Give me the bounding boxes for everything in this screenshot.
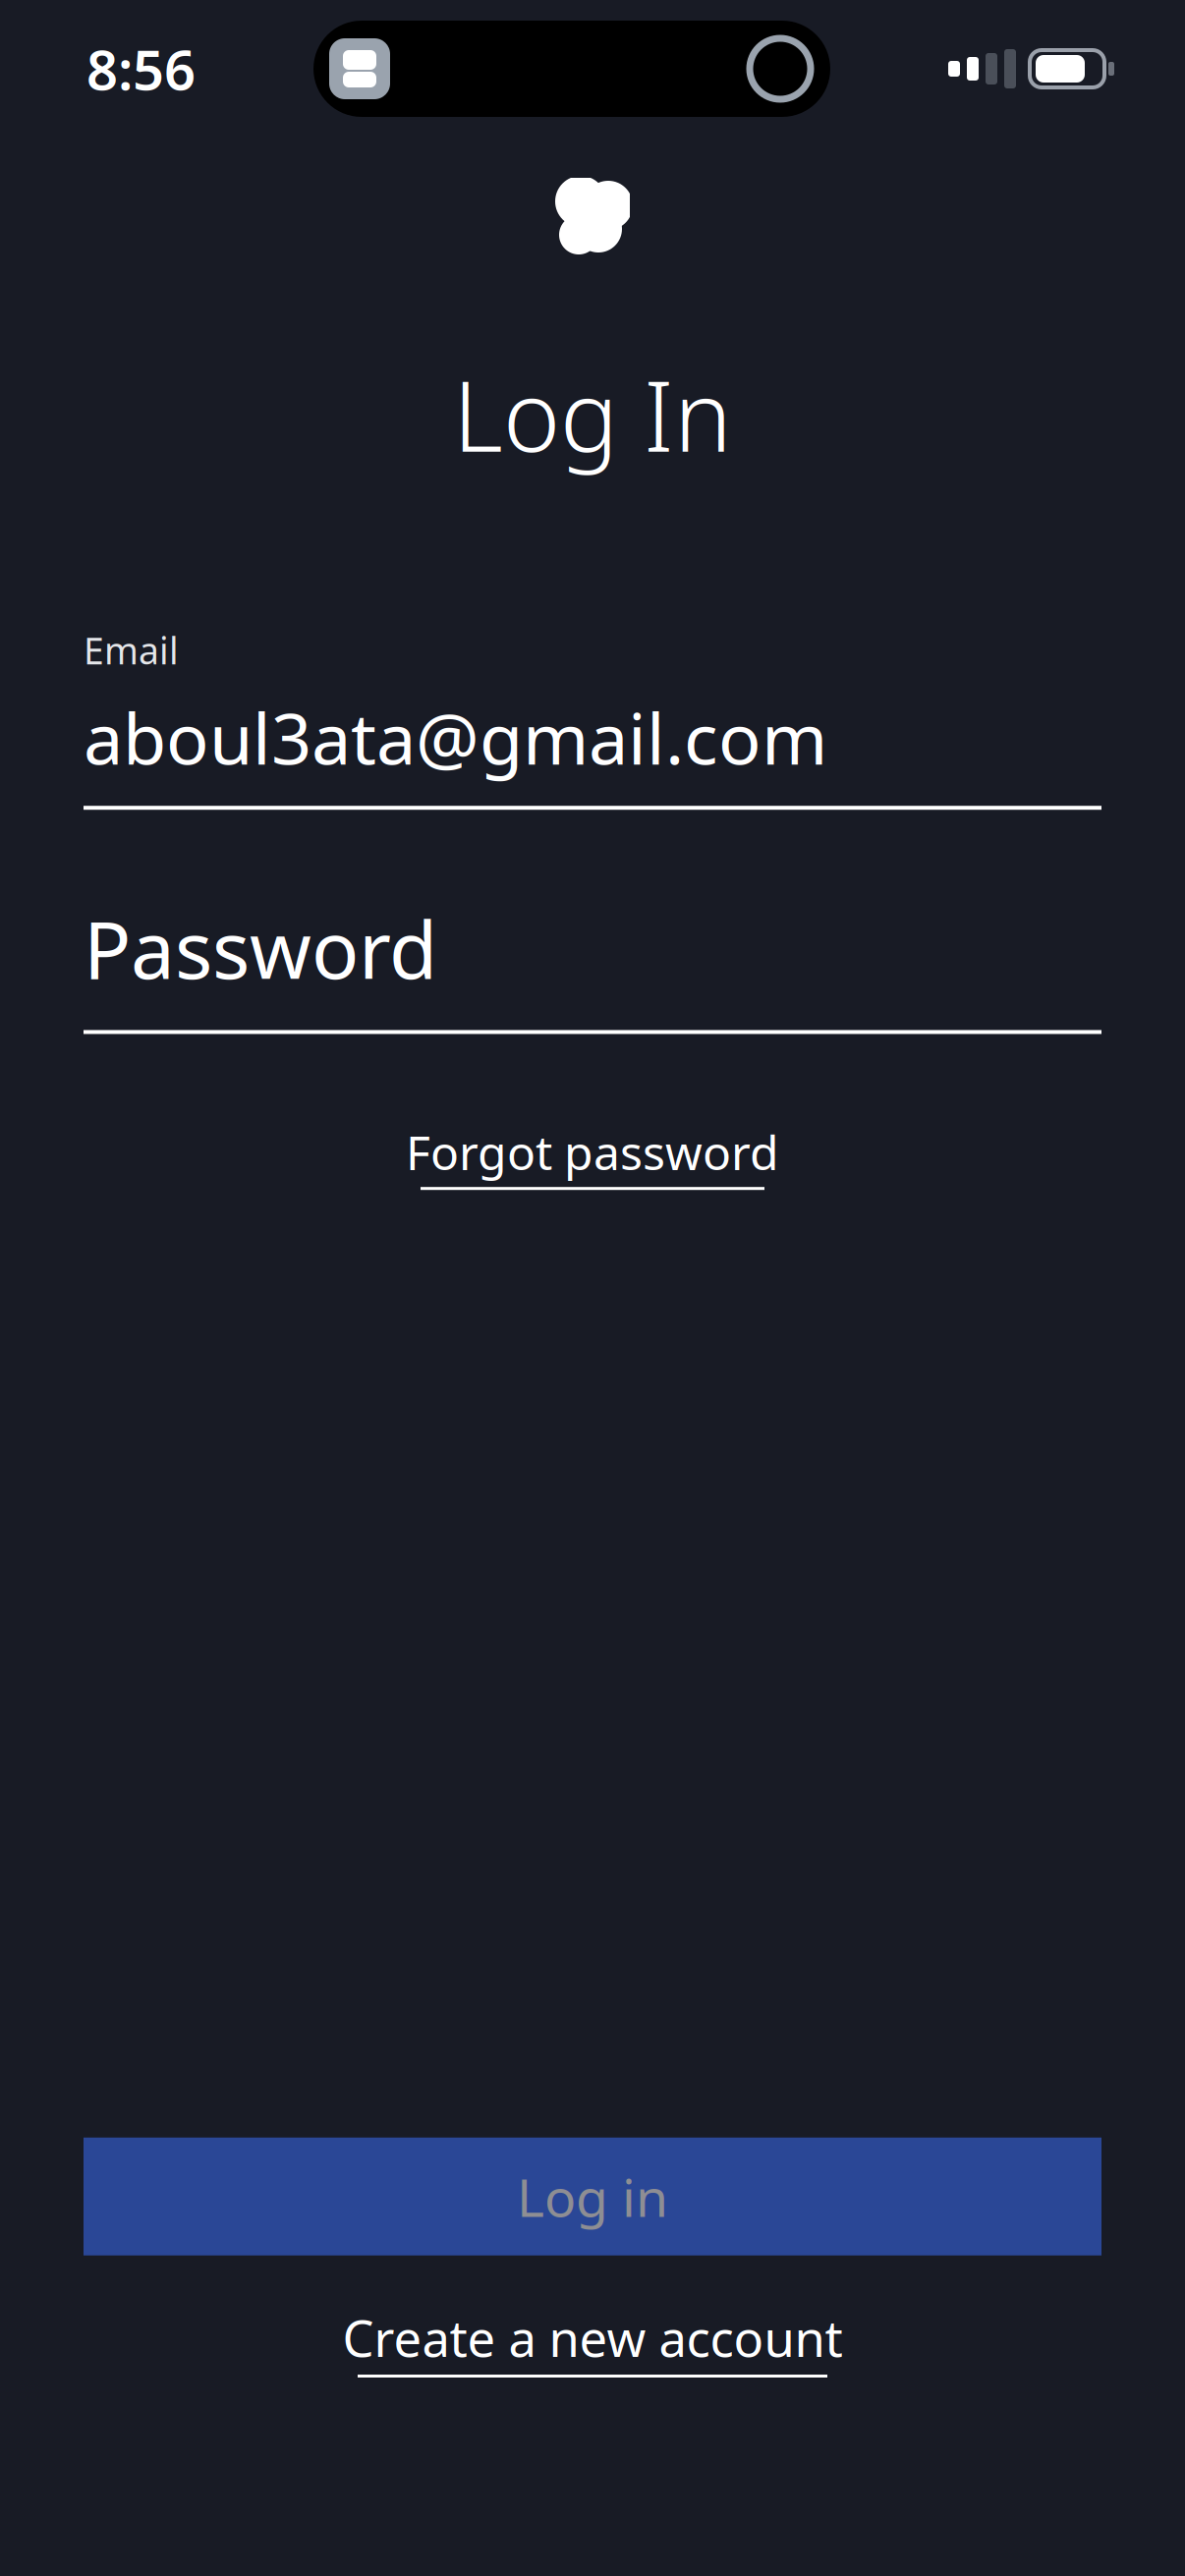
staticText: Email (84, 626, 179, 675)
staticText: Forgot password (406, 1120, 779, 1183)
button[interactable]: Create a new account (319, 2293, 866, 2389)
staticText: P (561, 149, 624, 285)
button[interactable]: Forgot password (382, 1111, 803, 1200)
staticText: Password (84, 896, 437, 1001)
button[interactable]: Log in (84, 2138, 1101, 2255)
staticText: 8:56 (86, 32, 196, 105)
staticText: Log in (517, 2162, 668, 2231)
staticText: Log In (453, 350, 732, 478)
staticText: Create a new account (342, 2305, 843, 2371)
staticText: aboul3ata@gmail.com (84, 690, 827, 784)
